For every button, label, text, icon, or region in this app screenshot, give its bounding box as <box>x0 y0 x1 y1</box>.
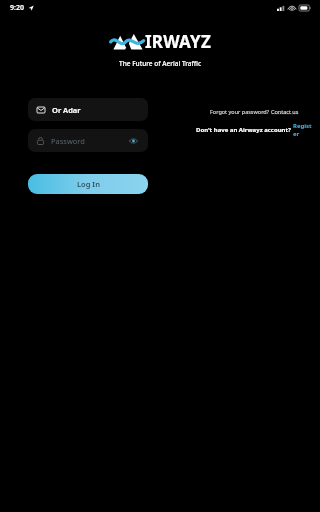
button[interactable]: Log In <box>28 174 148 194</box>
staticText: The Future of Aerial Traffic <box>119 59 202 68</box>
button[interactable]: Or Adar <box>28 98 148 121</box>
button[interactable]: Contact us <box>271 108 299 115</box>
button[interactable]: Register <box>293 122 312 138</box>
staticText: Forgot your password? <box>210 108 271 115</box>
staticText: IRWAYZ <box>145 30 211 53</box>
staticText: Register <box>293 122 312 138</box>
staticText: 9:20 <box>10 3 24 13</box>
staticText: Password <box>51 136 128 146</box>
button[interactable]: Password <box>28 129 148 152</box>
staticText: Log In <box>77 179 100 189</box>
staticText: Or Adar <box>52 105 81 115</box>
staticText: Don't have an Airwayz account? <box>196 126 293 134</box>
button[interactable]: Show password <box>128 135 139 146</box>
staticText: Contact us <box>271 108 299 115</box>
